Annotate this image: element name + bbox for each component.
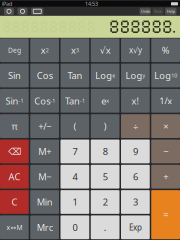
button[interactable]: e xyxy=(91,89,120,113)
staticText: x xyxy=(71,44,76,56)
staticText: C xyxy=(11,196,17,208)
button[interactable]: 1/x xyxy=(151,89,180,113)
staticText: Min xyxy=(37,196,53,208)
staticText: y xyxy=(142,72,145,79)
button[interactable]: Mrc xyxy=(30,215,59,239)
button[interactable]: x↔M xyxy=(0,215,29,239)
button[interactable]: Info xyxy=(4,8,14,15)
button[interactable]: 7 xyxy=(60,139,89,163)
button[interactable]: Tan xyxy=(60,64,89,87)
button[interactable]: x! xyxy=(121,89,150,113)
button[interactable]: ( xyxy=(60,114,89,138)
staticText: +/− xyxy=(38,120,51,132)
button[interactable]: 1 xyxy=(60,190,89,214)
button[interactable]: 6 xyxy=(121,165,150,189)
button[interactable]: ÷ xyxy=(121,114,150,138)
staticText: Tan xyxy=(65,95,80,107)
staticText: − xyxy=(163,145,168,158)
button[interactable]: Log xyxy=(121,64,150,87)
button[interactable]: Cos xyxy=(30,64,59,87)
button[interactable]: % xyxy=(151,38,180,62)
staticText: Log xyxy=(154,69,171,82)
staticText: 3 xyxy=(76,47,79,54)
staticText: 1 xyxy=(72,196,77,208)
staticText: . xyxy=(104,221,107,233)
staticText: -1 xyxy=(18,97,23,104)
staticText: Log xyxy=(125,69,142,82)
staticText: Deg xyxy=(8,46,21,55)
button[interactable]: Settings xyxy=(17,8,27,15)
staticText: M+ xyxy=(38,145,51,158)
staticText: 10 xyxy=(171,72,177,79)
button[interactable]: Log xyxy=(91,64,120,87)
button[interactable]: ⌫ xyxy=(0,139,29,163)
staticText: 5 xyxy=(103,170,108,183)
staticText: + xyxy=(163,170,168,183)
staticText: = xyxy=(163,208,168,221)
button[interactable]: Min xyxy=(30,190,59,214)
staticText: 7 xyxy=(72,145,77,158)
button[interactable]: x xyxy=(60,38,89,62)
staticText: 0 xyxy=(72,221,77,233)
staticText: Redo xyxy=(154,9,162,14)
staticText: x xyxy=(106,97,109,104)
button[interactable]: . xyxy=(91,215,120,239)
staticText: -1 xyxy=(50,97,55,104)
staticText: 3 xyxy=(133,196,138,208)
button[interactable]: ) xyxy=(91,114,120,138)
staticText: √x xyxy=(100,44,111,56)
button[interactable]: π xyxy=(0,114,29,138)
staticText: × xyxy=(163,120,168,132)
staticText: ) xyxy=(104,120,107,132)
staticText: AC xyxy=(8,170,20,183)
button[interactable]: M− xyxy=(30,165,59,189)
button[interactable]: − xyxy=(151,139,180,163)
button[interactable]: Log xyxy=(151,64,180,87)
button[interactable]: 8 xyxy=(91,139,120,163)
staticText: 8 xyxy=(103,145,108,158)
staticText: Cos xyxy=(37,69,53,82)
button[interactable]: + xyxy=(151,165,180,189)
button[interactable]: M+ xyxy=(30,139,59,163)
staticText: Sin xyxy=(5,95,18,107)
button[interactable]: Sin xyxy=(0,64,29,87)
staticText: ( xyxy=(73,120,76,132)
button[interactable]: Cos xyxy=(30,89,59,113)
button[interactable]: 0 xyxy=(60,215,89,239)
staticText: Cos xyxy=(34,95,50,107)
staticText: Tan xyxy=(67,69,82,82)
staticText: ⌫ xyxy=(8,146,21,157)
button[interactable]: C xyxy=(0,190,29,214)
staticText: π xyxy=(11,120,17,132)
staticText: ÷ xyxy=(133,120,138,132)
button[interactable]: Tan xyxy=(60,89,89,113)
button[interactable]: x xyxy=(30,38,59,62)
staticText: 4 xyxy=(72,170,77,183)
button[interactable]: Tape xyxy=(31,8,43,15)
button[interactable]: Redo xyxy=(152,8,164,15)
button[interactable]: 2 xyxy=(91,190,120,214)
button[interactable]: = xyxy=(151,190,180,239)
staticText: Mrc xyxy=(37,221,53,233)
button[interactable]: AC xyxy=(0,165,29,189)
button[interactable]: x√y xyxy=(121,38,150,62)
button[interactable]: 9 xyxy=(121,139,150,163)
button[interactable]: Undo xyxy=(139,8,151,15)
button[interactable]: 4 xyxy=(60,165,89,189)
staticText: Help xyxy=(167,9,175,14)
staticText: % xyxy=(162,44,170,56)
button[interactable]: Exp xyxy=(121,215,150,239)
staticText: iPad xyxy=(2,0,12,7)
button[interactable]: Help xyxy=(165,8,176,15)
button[interactable]: Sin xyxy=(0,89,29,113)
staticText: 1/x xyxy=(159,95,172,107)
staticText: x↔M xyxy=(6,223,22,232)
staticText: Exp xyxy=(129,222,142,233)
button[interactable]: 5 xyxy=(91,165,120,189)
button[interactable]: 3 xyxy=(121,190,150,214)
button[interactable]: Deg xyxy=(0,38,29,62)
button[interactable]: +/− xyxy=(30,114,59,138)
staticText: x xyxy=(41,44,46,56)
button[interactable]: √x xyxy=(91,38,120,62)
button[interactable]: × xyxy=(151,114,180,138)
